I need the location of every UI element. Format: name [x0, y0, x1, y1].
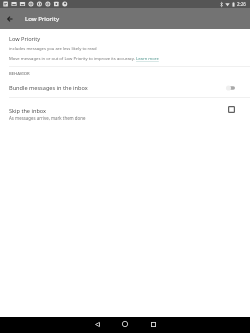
staticText: 2:26	[237, 1, 246, 7]
button[interactable]: Home	[117, 316, 133, 332]
staticText: Move messages in or out of Low Priority …	[9, 56, 159, 62]
button[interactable]: Back	[89, 316, 105, 332]
staticText: BEHAVIOR	[9, 71, 30, 77]
staticText: Low Priority	[9, 35, 41, 43]
button[interactable]: Skip the inbox	[0, 107, 250, 127]
button[interactable]: Bundle messages in the inbox	[0, 80, 250, 95]
staticText: Bundle messages in the inbox	[9, 84, 88, 92]
button[interactable]: Navigate up	[0, 8, 19, 29]
staticText: As messages arrive, mark them done	[9, 115, 86, 121]
button[interactable]: Recent apps	[145, 316, 161, 332]
staticText: Low Priority	[25, 14, 59, 22]
staticText: includes messages you are less likely to…	[9, 46, 97, 52]
staticText: Skip the inbox	[9, 107, 47, 115]
